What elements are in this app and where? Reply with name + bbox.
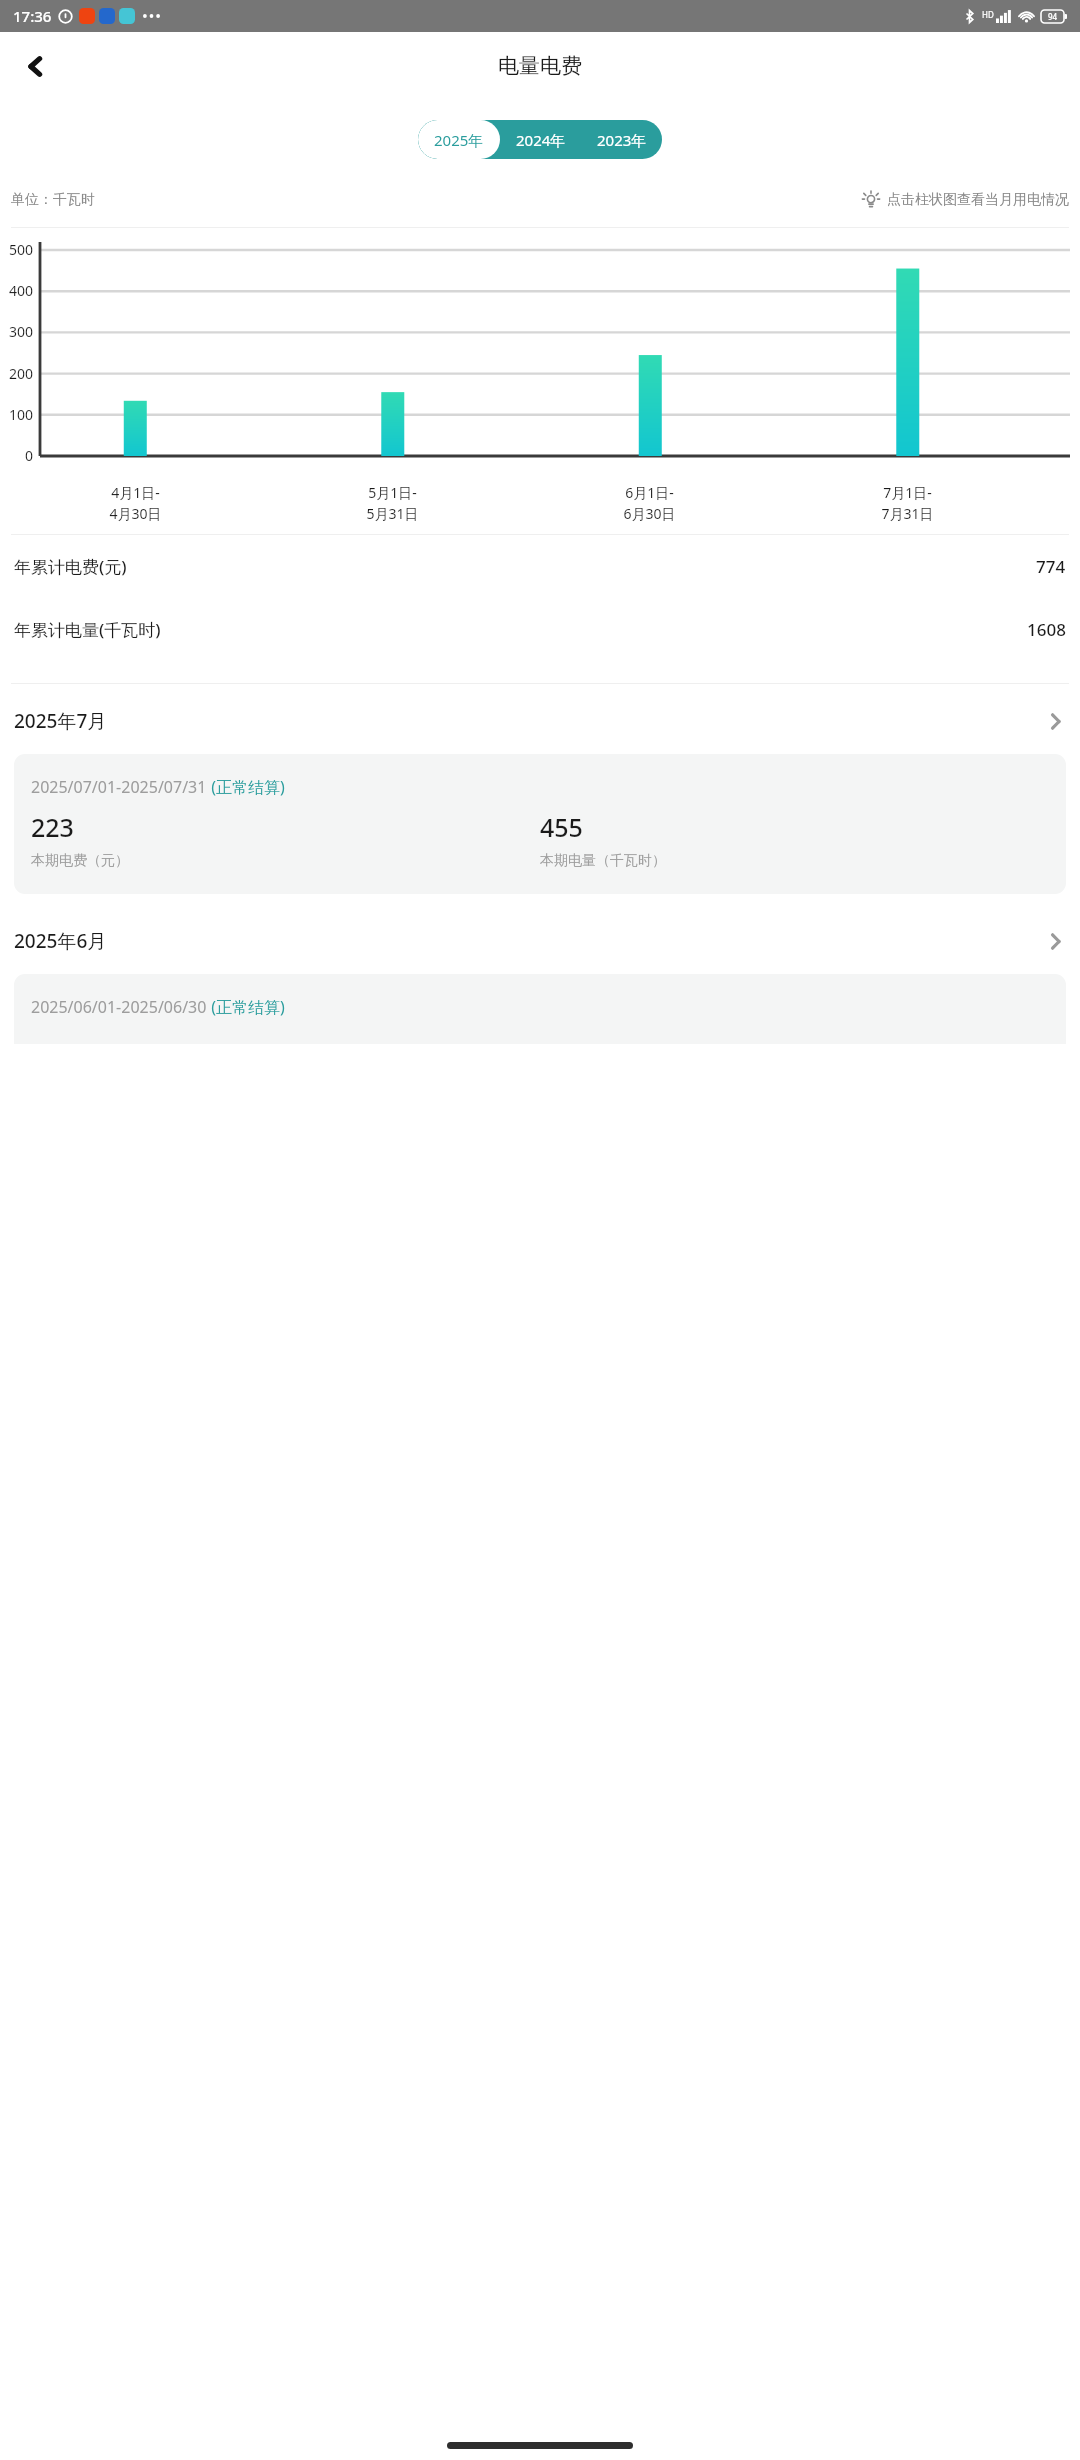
staticText: 100: [9, 405, 34, 424]
staticText: 17:36: [13, 6, 52, 26]
other: Open month details: [1045, 711, 1066, 732]
staticText: 年累计电费(元): [14, 555, 127, 578]
staticText: 774: [1036, 555, 1066, 578]
staticText: 单位：千瓦时: [11, 191, 95, 209]
staticText: 0: [25, 446, 34, 465]
staticText: 2025年: [434, 130, 484, 150]
other: Open month details: [1045, 931, 1066, 952]
button[interactable]: 2025/07/01-2025/07/31: [14, 754, 1066, 894]
staticText: 5月1日- 5月31日: [366, 483, 419, 524]
staticText: 2025/06/01-2025/06/30: [31, 996, 207, 1018]
staticText: 本期电费（元）: [31, 852, 129, 870]
staticText: 94: [1048, 11, 1058, 22]
staticText: 200: [9, 364, 34, 383]
button[interactable]: 2025年6月: [0, 918, 1080, 964]
staticText: 500: [9, 240, 34, 259]
staticText: 2025年6月: [14, 928, 107, 954]
staticText: 1608: [1027, 618, 1066, 641]
staticText: 电量电费: [498, 53, 582, 79]
staticText: 2025年7月: [14, 708, 107, 734]
staticText: 2023年: [597, 130, 647, 150]
button[interactable]: 2025年: [418, 120, 500, 159]
staticText: 300: [9, 322, 34, 341]
button[interactable]: Back: [12, 43, 58, 89]
button[interactable]: 2025年7月: [0, 698, 1080, 744]
staticText: 6月1日- 6月30日: [623, 483, 676, 524]
staticText: 400: [9, 281, 34, 300]
button[interactable]: 2023年: [581, 120, 662, 159]
staticText: 7月1日- 7月31日: [881, 483, 934, 524]
staticText: (正常结算): [207, 996, 285, 1018]
staticText: 本期电量（千瓦时）: [540, 852, 666, 870]
button[interactable]: 2024年: [500, 120, 581, 159]
staticText: 223: [31, 810, 74, 844]
button[interactable]: 年累计电费(元): [0, 535, 1080, 598]
button[interactable]: 2025/06/01-2025/06/30: [14, 974, 1066, 1044]
staticText: 4月1日- 4月30日: [109, 483, 162, 524]
staticText: 年累计电量(千瓦时): [14, 618, 161, 641]
staticText: 455: [540, 810, 583, 844]
button[interactable]: 年累计电量(千瓦时): [0, 598, 1080, 661]
staticText: 点击柱状图查看当月用电情况: [887, 191, 1069, 209]
staticText: 2025/07/01-2025/07/31: [31, 776, 207, 798]
staticText: (正常结算): [207, 776, 285, 798]
staticText: 2024年: [516, 130, 566, 150]
staticText: HD: [982, 9, 994, 20]
